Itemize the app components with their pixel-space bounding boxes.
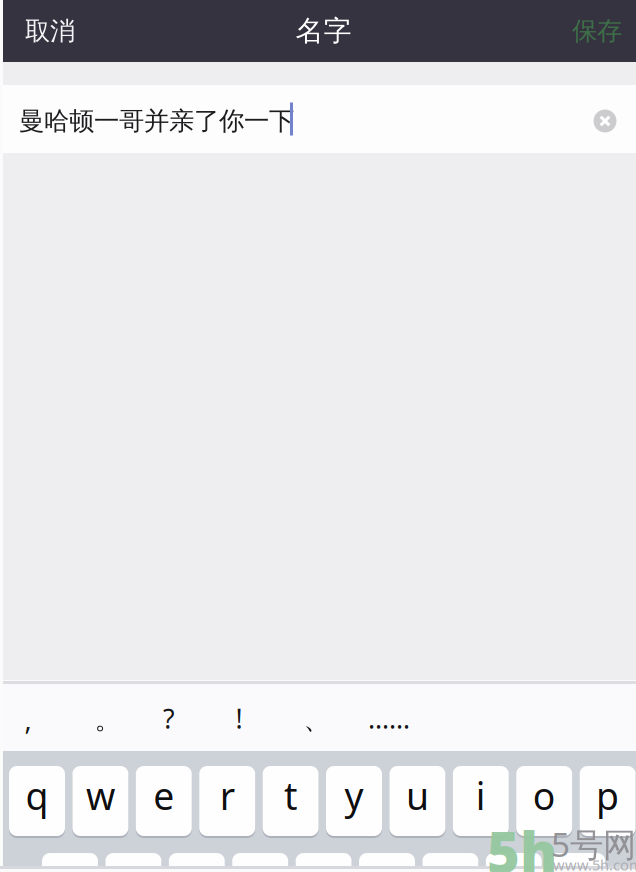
staticText: g	[312, 858, 335, 872]
staticText: ,	[24, 702, 31, 737]
button[interactable]: i	[453, 765, 509, 837]
staticText: i	[476, 771, 486, 820]
button[interactable]: 、	[288, 684, 346, 755]
button[interactable]: o	[516, 765, 572, 837]
staticText: o	[533, 771, 556, 820]
staticText: f	[254, 858, 267, 872]
staticText: w	[86, 771, 115, 820]
staticText: t	[284, 771, 297, 820]
button[interactable]: q	[9, 765, 65, 837]
button[interactable]: ?	[140, 683, 198, 754]
staticText: 、	[303, 703, 330, 736]
button[interactable]: 。	[79, 684, 137, 755]
staticText: k	[504, 858, 524, 872]
staticText: e	[153, 771, 174, 820]
button[interactable]: s	[105, 852, 161, 872]
staticText: 保存	[572, 15, 622, 46]
button[interactable]: a	[42, 852, 98, 872]
button[interactable]: d	[169, 852, 225, 872]
button[interactable]: g	[296, 852, 352, 872]
button[interactable]: w	[72, 765, 128, 837]
staticText: j	[445, 858, 455, 872]
staticText: 名字	[295, 14, 351, 48]
staticText: ?	[163, 701, 175, 736]
staticText: y	[344, 771, 363, 820]
staticText: h	[375, 858, 398, 872]
staticText: 曼哈顿一哥并亲了你一下	[19, 105, 294, 136]
button[interactable]: h	[359, 852, 415, 872]
staticText: 。	[94, 703, 121, 736]
staticText: 5h	[487, 814, 558, 872]
button[interactable]: !	[210, 683, 268, 754]
button[interactable]: j	[422, 852, 478, 872]
button[interactable]: 取消	[0, 0, 93, 62]
button[interactable]: k	[486, 852, 542, 872]
button[interactable]: p	[580, 765, 636, 837]
staticText: a	[59, 858, 80, 872]
staticText: ……	[368, 701, 410, 736]
button[interactable]: u	[389, 765, 445, 837]
button[interactable]: Clear text	[593, 109, 616, 132]
button[interactable]: f	[232, 852, 288, 872]
button[interactable]: y	[326, 765, 382, 837]
staticText: q	[25, 771, 48, 820]
staticText: d	[185, 858, 208, 872]
button[interactable]: e	[136, 765, 192, 837]
staticText: !	[235, 701, 242, 736]
staticText: 5号网	[551, 822, 636, 866]
staticText: s	[124, 858, 142, 872]
button[interactable]: ,	[0, 684, 57, 755]
staticText: p	[596, 771, 619, 820]
button[interactable]: ……	[360, 683, 418, 754]
staticText: l	[572, 858, 582, 872]
button[interactable]: t	[263, 765, 319, 837]
button[interactable]: 保存	[554, 0, 636, 62]
staticText: r	[220, 771, 235, 820]
staticText: u	[406, 771, 429, 820]
button[interactable]: l	[549, 852, 605, 872]
button[interactable]: r	[199, 765, 255, 837]
staticText: www.5h.com	[553, 855, 636, 872]
staticText: 取消	[25, 15, 75, 46]
